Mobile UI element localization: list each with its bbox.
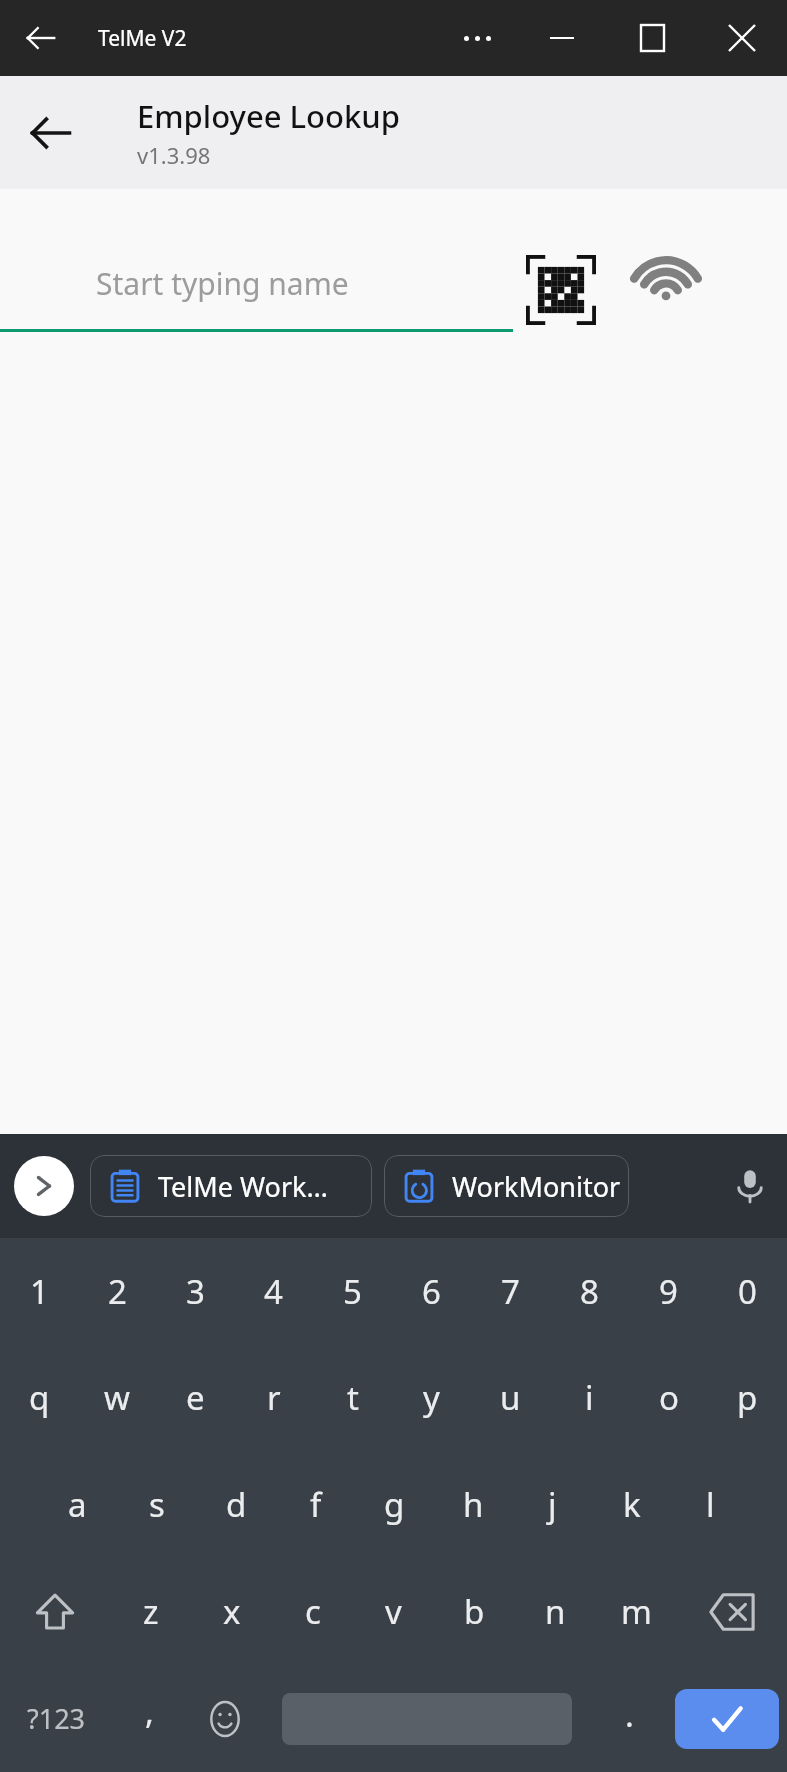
staticText: v1.3.98 (137, 140, 211, 170)
staticText: e (186, 1375, 205, 1420)
button[interactable]: u (471, 1344, 550, 1451)
button[interactable]: d (197, 1451, 276, 1558)
staticText: s (149, 1482, 165, 1527)
button[interactable]: r (234, 1344, 313, 1451)
staticText: 1 (30, 1269, 49, 1314)
button[interactable]: 4 (234, 1238, 313, 1344)
staticText: Start typing name (96, 263, 349, 304)
button[interactable]: 2 (78, 1238, 156, 1344)
staticText: v (385, 1589, 402, 1634)
button[interactable]: 8 (550, 1238, 629, 1344)
staticText: x (223, 1589, 241, 1634)
staticText: j (548, 1482, 557, 1527)
staticText: TelMe Work… (158, 1168, 328, 1205)
staticText: . (625, 1692, 634, 1737)
button[interactable]: t (313, 1344, 392, 1451)
button[interactable]: w (78, 1344, 156, 1451)
staticText: z (143, 1589, 159, 1634)
staticText: d (226, 1482, 247, 1527)
button[interactable]: s (117, 1451, 197, 1558)
button[interactable]: . (592, 1665, 667, 1772)
staticText: Employee Lookup (137, 95, 400, 137)
button[interactable]: Expand toolbar (14, 1156, 74, 1216)
staticText: 8 (580, 1269, 599, 1314)
button[interactable]: Shift (0, 1558, 110, 1665)
staticText: a (68, 1482, 87, 1527)
staticText: t (347, 1375, 359, 1420)
button[interactable]: 7 (471, 1238, 550, 1344)
button[interactable]: 3 (156, 1238, 234, 1344)
button[interactable]: v (353, 1558, 434, 1665)
staticText: WorkMonitor (452, 1168, 621, 1205)
button[interactable]: Navigate up (12, 94, 90, 172)
button[interactable]: 0 (708, 1238, 787, 1344)
staticText: n (545, 1589, 566, 1634)
button[interactable]: k (592, 1451, 671, 1558)
staticText: TelMe V2 (98, 24, 187, 53)
button[interactable]: 5 (313, 1238, 392, 1344)
staticText: h (463, 1482, 484, 1527)
staticText: w (104, 1375, 130, 1420)
button[interactable]: Space (262, 1665, 592, 1772)
button[interactable]: j (513, 1451, 592, 1558)
button[interactable]: More options (437, 0, 517, 76)
button[interactable]: g (355, 1451, 434, 1558)
button[interactable]: i (550, 1344, 629, 1451)
staticText: l (706, 1482, 715, 1527)
staticText: u (500, 1375, 521, 1420)
button[interactable]: Close (697, 0, 787, 76)
button[interactable]: Backspace (677, 1558, 787, 1665)
staticText: 2 (108, 1269, 127, 1314)
button[interactable]: 1 (0, 1238, 78, 1344)
staticText: m (621, 1589, 652, 1634)
button[interactable]: b (434, 1558, 515, 1665)
staticText: 4 (264, 1269, 283, 1314)
staticText: 5 (343, 1269, 362, 1314)
button[interactable]: Start typing name (0, 237, 513, 329)
staticText: 7 (501, 1269, 520, 1314)
button[interactable]: Scan QR code (520, 249, 602, 331)
button[interactable]: e (156, 1344, 234, 1451)
staticText: 9 (659, 1269, 678, 1314)
button[interactable]: h (434, 1451, 513, 1558)
staticText: i (585, 1375, 594, 1420)
button[interactable]: Minimize (517, 0, 607, 76)
button[interactable]: NFC scan (622, 245, 710, 333)
button[interactable]: l (671, 1451, 750, 1558)
button[interactable]: Enter (675, 1689, 779, 1749)
staticText: 3 (186, 1269, 205, 1314)
staticText: c (305, 1589, 321, 1634)
button[interactable]: f (276, 1451, 355, 1558)
staticText: ?123 (27, 1700, 86, 1737)
button[interactable]: c (272, 1558, 353, 1665)
staticText: f (310, 1482, 322, 1527)
staticText: 6 (422, 1269, 441, 1314)
button[interactable]: WorkMonitor (384, 1155, 629, 1217)
staticText: 0 (738, 1269, 757, 1314)
button[interactable]: ?123 (0, 1665, 112, 1772)
button[interactable]: z (110, 1558, 191, 1665)
button[interactable]: Emoji (187, 1665, 262, 1772)
button[interactable]: y (392, 1344, 471, 1451)
button[interactable]: m (596, 1558, 677, 1665)
button[interactable]: o (629, 1344, 708, 1451)
staticText: r (267, 1375, 281, 1420)
staticText: p (737, 1375, 758, 1420)
button[interactable]: TelMe Work… (90, 1155, 372, 1217)
staticText: g (384, 1482, 405, 1527)
staticText: q (29, 1375, 50, 1420)
button[interactable]: Back (8, 0, 74, 76)
button[interactable]: q (0, 1344, 78, 1451)
button[interactable]: x (191, 1558, 272, 1665)
button[interactable]: 6 (392, 1238, 471, 1344)
button[interactable]: , (112, 1665, 187, 1772)
button[interactable]: 9 (629, 1238, 708, 1344)
button[interactable]: a (37, 1451, 117, 1558)
staticText: , (145, 1689, 154, 1734)
button[interactable]: n (515, 1558, 596, 1665)
button[interactable]: Voice input (719, 1155, 781, 1217)
button[interactable]: p (708, 1344, 787, 1451)
staticText: k (623, 1482, 641, 1527)
button[interactable]: Maximize (607, 0, 697, 76)
staticText: o (659, 1375, 679, 1420)
